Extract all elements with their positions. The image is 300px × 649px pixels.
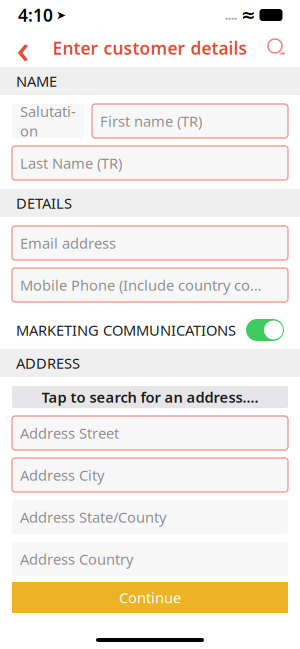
- staticText: Address Country: [20, 549, 133, 569]
- staticText: 4:10: [18, 3, 53, 26]
- staticText: DETAILS: [16, 193, 72, 213]
- button[interactable]: First name (TR): [92, 104, 288, 138]
- staticText: ....: [225, 7, 237, 23]
- button[interactable]: Address City: [12, 458, 288, 492]
- button[interactable]: Salutation: [12, 104, 84, 138]
- button[interactable]: Mobile Phone (Include country co…: [12, 268, 288, 302]
- staticText: Address Street: [20, 423, 119, 443]
- button[interactable]: Address Country: [12, 542, 288, 576]
- staticText: Continue: [119, 588, 181, 607]
- staticText: Mobile Phone (Include country co…: [20, 275, 262, 295]
- staticText: Address City: [20, 465, 104, 485]
- staticText: ADDRESS: [16, 353, 80, 373]
- staticText: Tap to search for an address....: [41, 387, 258, 407]
- staticText: NAME: [16, 71, 57, 91]
- button[interactable]: Back: [6, 31, 40, 65]
- staticText: ‹: [16, 21, 29, 74]
- button[interactable]: Email address: [12, 226, 288, 260]
- button[interactable]: Search: [260, 31, 294, 65]
- staticText: Address State/County: [20, 507, 166, 527]
- button[interactable]: Address State/County: [12, 500, 288, 534]
- staticText: Email address: [20, 233, 116, 253]
- staticText: Enter customer details: [52, 36, 247, 59]
- button[interactable]: Continue: [12, 582, 288, 613]
- staticText: ≈: [241, 5, 256, 25]
- staticText: Last Name (TR): [20, 153, 122, 173]
- staticText: Salutation: [20, 101, 76, 140]
- staticText: MARKETING COMMUNICATIONS: [16, 320, 236, 340]
- button[interactable]: Last Name (TR): [12, 146, 288, 180]
- button[interactable]: Tap to search for an address....: [12, 386, 288, 408]
- staticText: ➤: [56, 8, 66, 22]
- button[interactable]: Address Street: [12, 416, 288, 450]
- button[interactable]: Marketing communications: [246, 319, 284, 341]
- staticText: First name (TR): [100, 111, 202, 131]
